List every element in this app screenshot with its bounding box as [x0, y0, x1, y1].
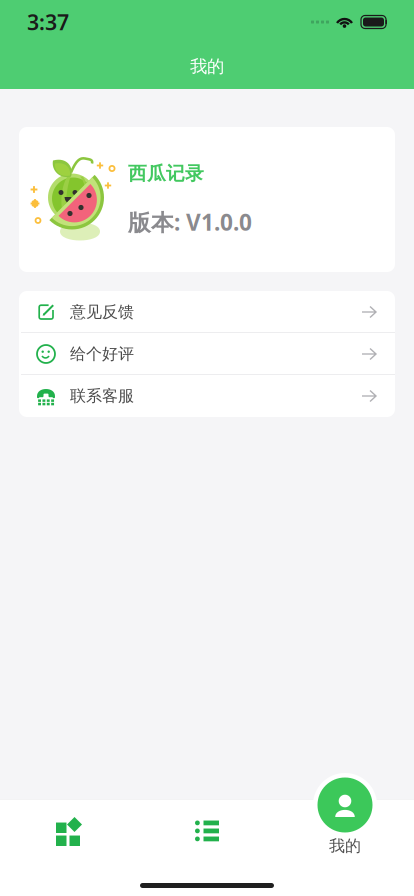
- button[interactable]: 我的: [276, 799, 414, 896]
- button[interactable]: 我的: [313, 773, 377, 837]
- staticText: 我的: [329, 836, 361, 856]
- button[interactable]: 列表: [138, 799, 276, 896]
- button[interactable]: 分类: [0, 799, 138, 896]
- staticText: 我的: [190, 56, 224, 77]
- staticText: 联系客服: [70, 386, 134, 406]
- button[interactable]: 意见反馈: [19, 291, 395, 333]
- staticText: 3:37: [27, 8, 69, 36]
- staticText: 意见反馈: [70, 302, 134, 322]
- staticText: 给个好评: [70, 344, 134, 364]
- staticText: 版本: V1.0.0: [128, 207, 252, 237]
- button[interactable]: 联系客服: [19, 375, 395, 417]
- button[interactable]: 给个好评: [19, 333, 395, 375]
- staticText: 西瓜记录: [128, 162, 204, 185]
